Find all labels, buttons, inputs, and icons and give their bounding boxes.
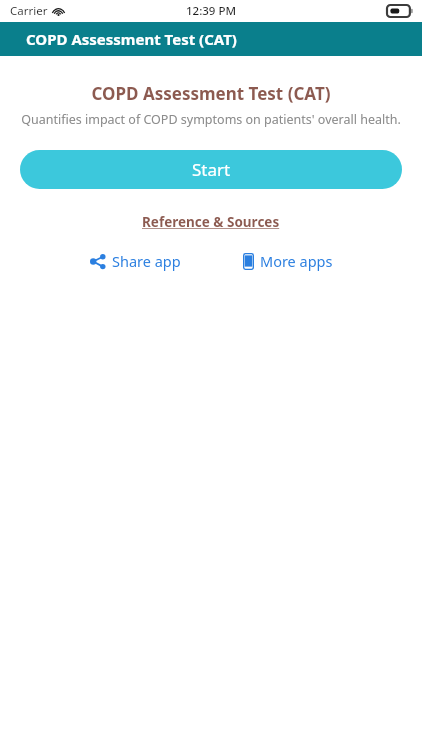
other: More apps [243, 253, 254, 270]
staticText: COPD Assessment Test (CAT) [26, 29, 237, 49]
staticText: More apps [260, 251, 333, 271]
button[interactable]: More apps [235, 247, 341, 275]
staticText: Start [192, 158, 231, 181]
button[interactable]: Start [20, 150, 402, 189]
staticText: Quantifies impact of COPD symptoms on pa… [14, 111, 408, 128]
staticText: COPD Assessment Test (CAT) [0, 82, 422, 105]
button[interactable]: Share app [82, 247, 189, 275]
staticText: 12:39 PM [186, 3, 237, 19]
other: Share app [90, 254, 106, 269]
button[interactable]: Reference & Sources [136, 211, 286, 233]
staticText: Carrier [10, 3, 48, 19]
staticText: Share app [112, 251, 181, 271]
staticText: Reference & Sources [142, 213, 280, 231]
